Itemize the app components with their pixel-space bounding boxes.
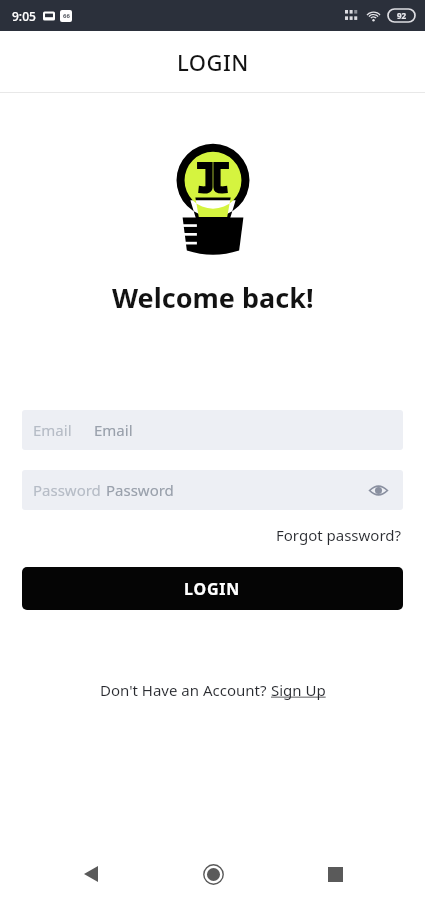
button[interactable]: Email — [22, 410, 403, 450]
staticText: LOGIN — [184, 578, 241, 600]
button[interactable]: Sign Up — [271, 680, 326, 700]
button[interactable]: Forgot password? — [274, 522, 404, 548]
staticText: Welcome back! — [112, 279, 314, 316]
staticText: Password — [33, 480, 101, 500]
button[interactable]: Home — [191, 852, 235, 896]
staticText: Email — [94, 420, 133, 440]
staticText: Don't Have an Account? — [100, 680, 271, 700]
button[interactable]: LOGIN — [22, 567, 403, 610]
button[interactable]: Password — [22, 470, 403, 510]
button[interactable]: Recent apps — [313, 852, 357, 896]
staticText: Email — [33, 420, 72, 440]
staticText: Forgot password? — [276, 525, 402, 545]
staticText: 9:05 — [12, 8, 36, 24]
staticText: Password — [106, 480, 174, 500]
staticText: 92 — [397, 10, 407, 21]
staticText: 66 — [63, 12, 70, 20]
button[interactable]: Back — [69, 852, 113, 896]
button[interactable]: Show password — [365, 477, 391, 503]
staticText: LOGIN — [177, 47, 249, 77]
staticText: Sign Up — [271, 680, 326, 700]
